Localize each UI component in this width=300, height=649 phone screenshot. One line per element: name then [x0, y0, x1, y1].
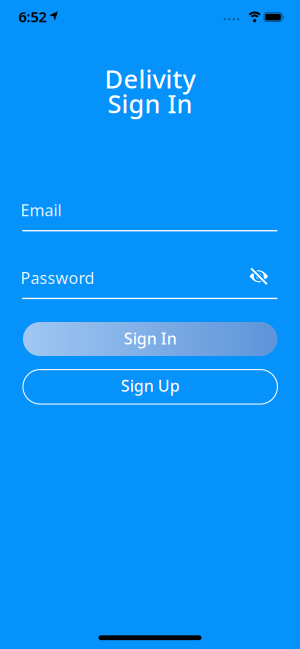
staticText: Sign Up [121, 375, 180, 396]
button[interactable]: Email [22, 199, 278, 231]
button[interactable]: Sign In [23, 322, 277, 356]
staticText: Delivity [104, 62, 195, 95]
button[interactable]: Show password [246, 263, 272, 289]
button[interactable]: Sign Up [23, 370, 277, 404]
staticText: Sign In [107, 87, 192, 120]
staticText: 6:52 [18, 7, 46, 26]
button[interactable]: Password [22, 267, 278, 299]
staticText: Password [20, 267, 94, 288]
staticText: Sign In [124, 328, 177, 349]
staticText: Email [20, 199, 61, 221]
